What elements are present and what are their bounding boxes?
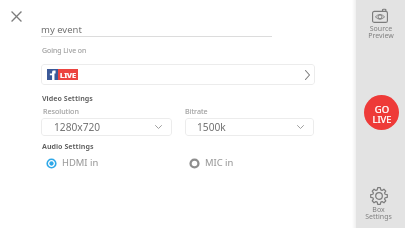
- button[interactable]: HDMI in: [46, 157, 99, 170]
- button[interactable]: Box Settings: [354, 187, 403, 222]
- button[interactable]: 1500k: [185, 118, 314, 136]
- staticText: Box Settings: [365, 205, 392, 222]
- staticText: 1500k: [197, 120, 226, 134]
- staticText: Going Live on: [42, 46, 87, 55]
- button[interactable]: GO LIVE: [364, 95, 399, 130]
- button[interactable]: Source Preview: [355, 9, 404, 41]
- button[interactable]: MIC in: [189, 157, 234, 170]
- staticText: my event: [41, 23, 82, 36]
- staticText: Source Preview: [368, 24, 394, 41]
- staticText: HDMI in: [62, 156, 99, 169]
- button[interactable]: Close: [5, 5, 27, 27]
- staticText: Bitrate: [185, 106, 208, 116]
- staticText: Audio Settings: [42, 141, 94, 151]
- button[interactable]: 1280x720: [41, 118, 172, 136]
- staticText: Video Settings: [42, 93, 93, 103]
- staticText: LIVE: [60, 70, 77, 80]
- staticText: GO LIVE: [372, 103, 392, 126]
- button[interactable]: LIVE: [41, 64, 315, 85]
- staticText: Resolution: [43, 106, 79, 116]
- staticText: MIC in: [205, 156, 234, 169]
- staticText: 1280x720: [54, 120, 101, 134]
